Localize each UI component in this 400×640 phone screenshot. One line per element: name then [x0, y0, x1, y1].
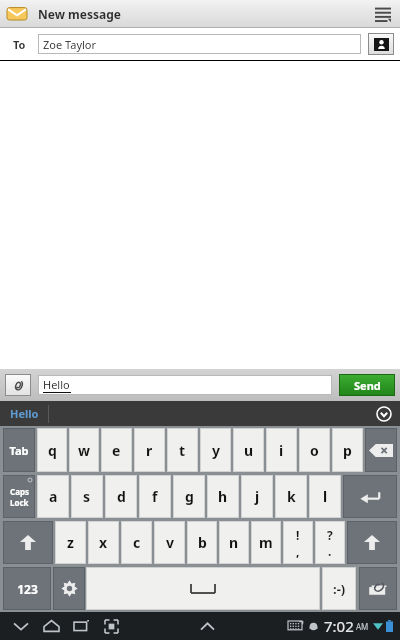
staticText: f [152, 487, 158, 506]
button[interactable]: j [241, 475, 273, 518]
staticText: ! [296, 527, 300, 543]
button[interactable]: Key [347, 521, 397, 564]
button[interactable]: k [275, 475, 307, 518]
staticText: e [112, 441, 121, 460]
button[interactable]: b [187, 521, 217, 564]
staticText: v [166, 533, 174, 552]
button[interactable]: Hide keyboard [6, 613, 36, 639]
staticText: j [255, 487, 260, 506]
staticText: Caps [10, 486, 29, 497]
staticText: n [229, 533, 239, 552]
button[interactable]: n [219, 521, 249, 564]
staticText: 7:02 [324, 616, 354, 636]
staticText: Send [354, 378, 381, 393]
staticText: Lock [10, 497, 29, 508]
button[interactable]: Key [53, 567, 85, 610]
staticText: w [78, 441, 90, 460]
button[interactable]: s [71, 475, 103, 518]
button[interactable]: Caps [3, 475, 35, 518]
button[interactable]: Expand suggestions [371, 401, 396, 426]
staticText: , [296, 543, 300, 559]
staticText: x [99, 533, 108, 552]
button[interactable]: Space [86, 567, 320, 610]
staticText: Hello [43, 377, 70, 392]
button[interactable]: ? [315, 521, 345, 564]
staticText: . [328, 543, 332, 559]
staticText: i [279, 441, 284, 460]
button[interactable]: Home [36, 613, 66, 639]
staticText: :-) [333, 580, 346, 598]
button[interactable]: Recent apps [66, 613, 96, 639]
button[interactable]: a [37, 475, 69, 518]
button[interactable]: Key [359, 567, 397, 610]
button[interactable]: 123 [3, 567, 51, 610]
button[interactable]: Zoe Taylor [38, 34, 361, 54]
button[interactable]: Hello [38, 375, 332, 395]
button[interactable]: f [139, 475, 171, 518]
button[interactable]: y [200, 428, 231, 472]
staticText: To [13, 37, 26, 52]
staticText: b [198, 533, 207, 552]
button[interactable]: z [55, 521, 86, 564]
staticText: u [244, 441, 254, 460]
staticText: g [185, 487, 194, 506]
staticText: z [67, 533, 74, 552]
staticText: 123 [17, 581, 38, 597]
button[interactable]: ! [283, 521, 313, 564]
button[interactable]: w [69, 428, 99, 472]
button[interactable]: l [309, 475, 341, 518]
button[interactable]: d [105, 475, 137, 518]
button[interactable]: More options [370, 1, 396, 27]
button[interactable]: Hello [0, 401, 48, 426]
button[interactable]: Key [343, 475, 397, 518]
button[interactable]: g [173, 475, 205, 518]
button[interactable]: Attach [5, 374, 31, 396]
staticText: t [179, 441, 186, 460]
staticText: AM [356, 621, 369, 632]
staticText: h [218, 487, 228, 506]
button[interactable]: c [121, 521, 152, 564]
staticText: Zoe Taylor [43, 37, 97, 52]
staticText: y [212, 441, 220, 460]
button[interactable]: Send [339, 374, 395, 396]
staticText: Hello [10, 406, 39, 421]
button[interactable]: x [88, 521, 119, 564]
button[interactable]: o [299, 428, 330, 472]
staticText: l [323, 487, 328, 506]
staticText: New message [38, 6, 121, 22]
staticText: r [146, 441, 153, 460]
button[interactable]: Screenshot [96, 613, 126, 639]
staticText: q [48, 441, 57, 460]
staticText: o [310, 441, 319, 460]
button[interactable]: h [207, 475, 239, 518]
button[interactable]: p [332, 428, 363, 472]
button[interactable]: Choose contact [368, 33, 394, 55]
staticText: Tab [9, 443, 29, 458]
staticText: c [133, 533, 141, 552]
button[interactable]: Key [3, 521, 53, 564]
button[interactable]: m [251, 521, 281, 564]
button[interactable]: e [101, 428, 132, 472]
staticText: m [259, 533, 273, 552]
button[interactable]: r [134, 428, 165, 472]
button[interactable]: t [167, 428, 198, 472]
staticText: p [343, 441, 352, 460]
staticText: k [287, 487, 296, 506]
button[interactable]: Key [365, 428, 397, 472]
button[interactable]: Messaging app [6, 3, 28, 25]
staticText: a [49, 487, 58, 506]
button[interactable]: q [37, 428, 67, 472]
button[interactable]: Tab [3, 428, 35, 472]
staticText: d [117, 487, 126, 506]
button[interactable]: v [154, 521, 185, 564]
staticText: s [83, 487, 91, 506]
button[interactable]: i [266, 428, 297, 472]
button[interactable]: u [233, 428, 264, 472]
button[interactable]: :-) [322, 567, 356, 610]
staticText: ? [327, 527, 333, 543]
